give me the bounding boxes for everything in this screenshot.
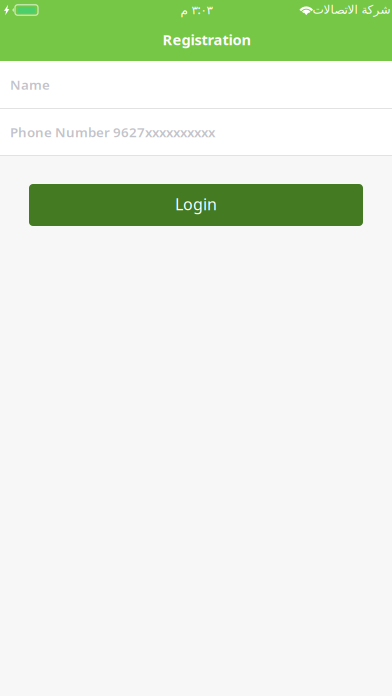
staticText: شركة الاتصالات: [312, 3, 390, 16]
staticText: Registration: [162, 30, 251, 49]
staticText: Name: [10, 76, 50, 93]
button[interactable]: Name: [0, 61, 392, 108]
staticText: Login: [175, 193, 217, 215]
button[interactable]: Login: [29, 184, 363, 226]
staticText: Phone Number 9627xxxxxxxxxx: [10, 123, 215, 141]
button[interactable]: Phone Number 9627xxxxxxxxxx: [0, 109, 392, 155]
staticText: ٣:٠٣ م: [180, 1, 212, 17]
